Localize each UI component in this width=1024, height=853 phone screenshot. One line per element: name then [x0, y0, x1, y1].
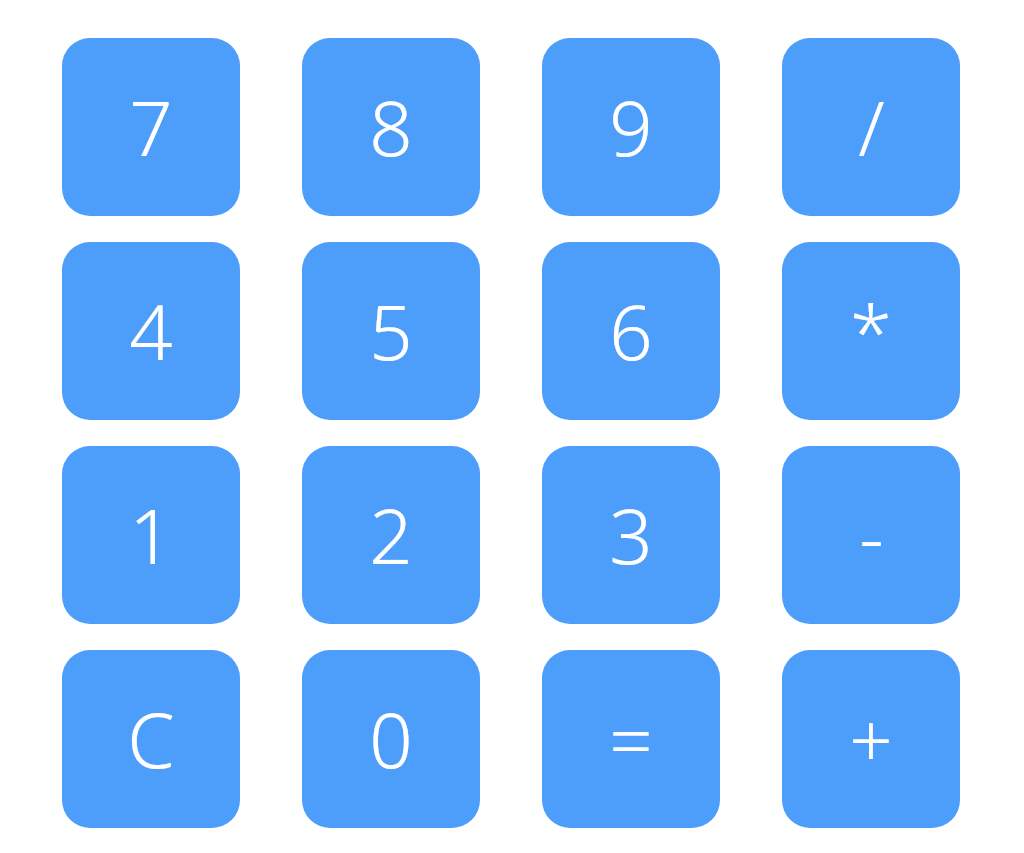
staticText: 7: [129, 75, 173, 179]
staticText: 9: [609, 75, 653, 179]
staticText: 3: [609, 483, 653, 587]
button[interactable]: 1: [62, 446, 240, 624]
button[interactable]: 0: [302, 650, 480, 828]
staticText: 4: [129, 279, 173, 383]
button[interactable]: -: [782, 446, 960, 624]
staticText: 1: [129, 483, 173, 587]
staticText: 8: [369, 75, 413, 179]
staticText: *: [850, 279, 892, 383]
staticText: 0: [369, 687, 413, 791]
button[interactable]: 4: [62, 242, 240, 420]
button[interactable]: +: [782, 650, 960, 828]
staticText: =: [609, 687, 653, 791]
staticText: C: [127, 687, 175, 791]
button[interactable]: *: [782, 242, 960, 420]
button[interactable]: 5: [302, 242, 480, 420]
button[interactable]: 9: [542, 38, 720, 216]
button[interactable]: =: [542, 650, 720, 828]
staticText: /: [858, 75, 885, 179]
staticText: 5: [369, 279, 413, 383]
button[interactable]: 7: [62, 38, 240, 216]
staticText: 6: [609, 279, 653, 383]
button[interactable]: 6: [542, 242, 720, 420]
staticText: +: [849, 687, 893, 791]
staticText: -: [859, 483, 884, 587]
staticText: 2: [369, 483, 413, 587]
button[interactable]: /: [782, 38, 960, 216]
button[interactable]: 2: [302, 446, 480, 624]
button[interactable]: 3: [542, 446, 720, 624]
button[interactable]: C: [62, 650, 240, 828]
button[interactable]: 8: [302, 38, 480, 216]
